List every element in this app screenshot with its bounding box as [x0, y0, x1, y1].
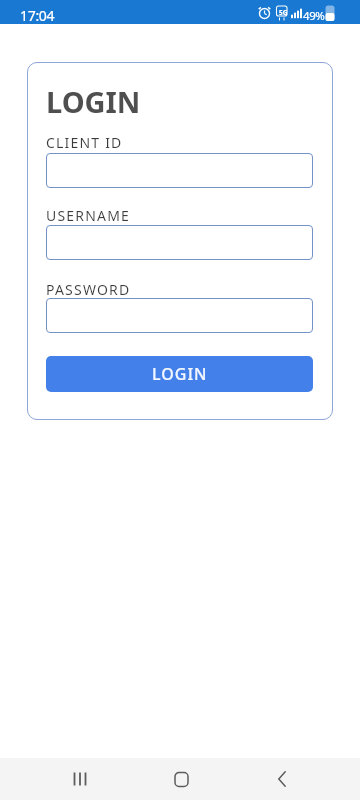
staticText: 5G	[279, 8, 288, 17]
button[interactable]	[56, 758, 104, 800]
button[interactable]	[258, 758, 306, 800]
staticText: LOGIN	[46, 82, 141, 121]
button[interactable]: LOGIN	[46, 356, 313, 392]
staticText: PASSWORD	[46, 280, 131, 299]
staticText: LOGIN	[152, 363, 208, 385]
button[interactable]	[157, 758, 205, 800]
button[interactable]	[46, 225, 313, 260]
staticText: CLIENT ID	[46, 133, 123, 152]
staticText: USERNAME	[46, 206, 131, 225]
staticText: 49%	[303, 8, 325, 24]
button[interactable]	[46, 298, 313, 333]
button[interactable]	[46, 153, 313, 188]
staticText: 17:04	[20, 6, 55, 25]
